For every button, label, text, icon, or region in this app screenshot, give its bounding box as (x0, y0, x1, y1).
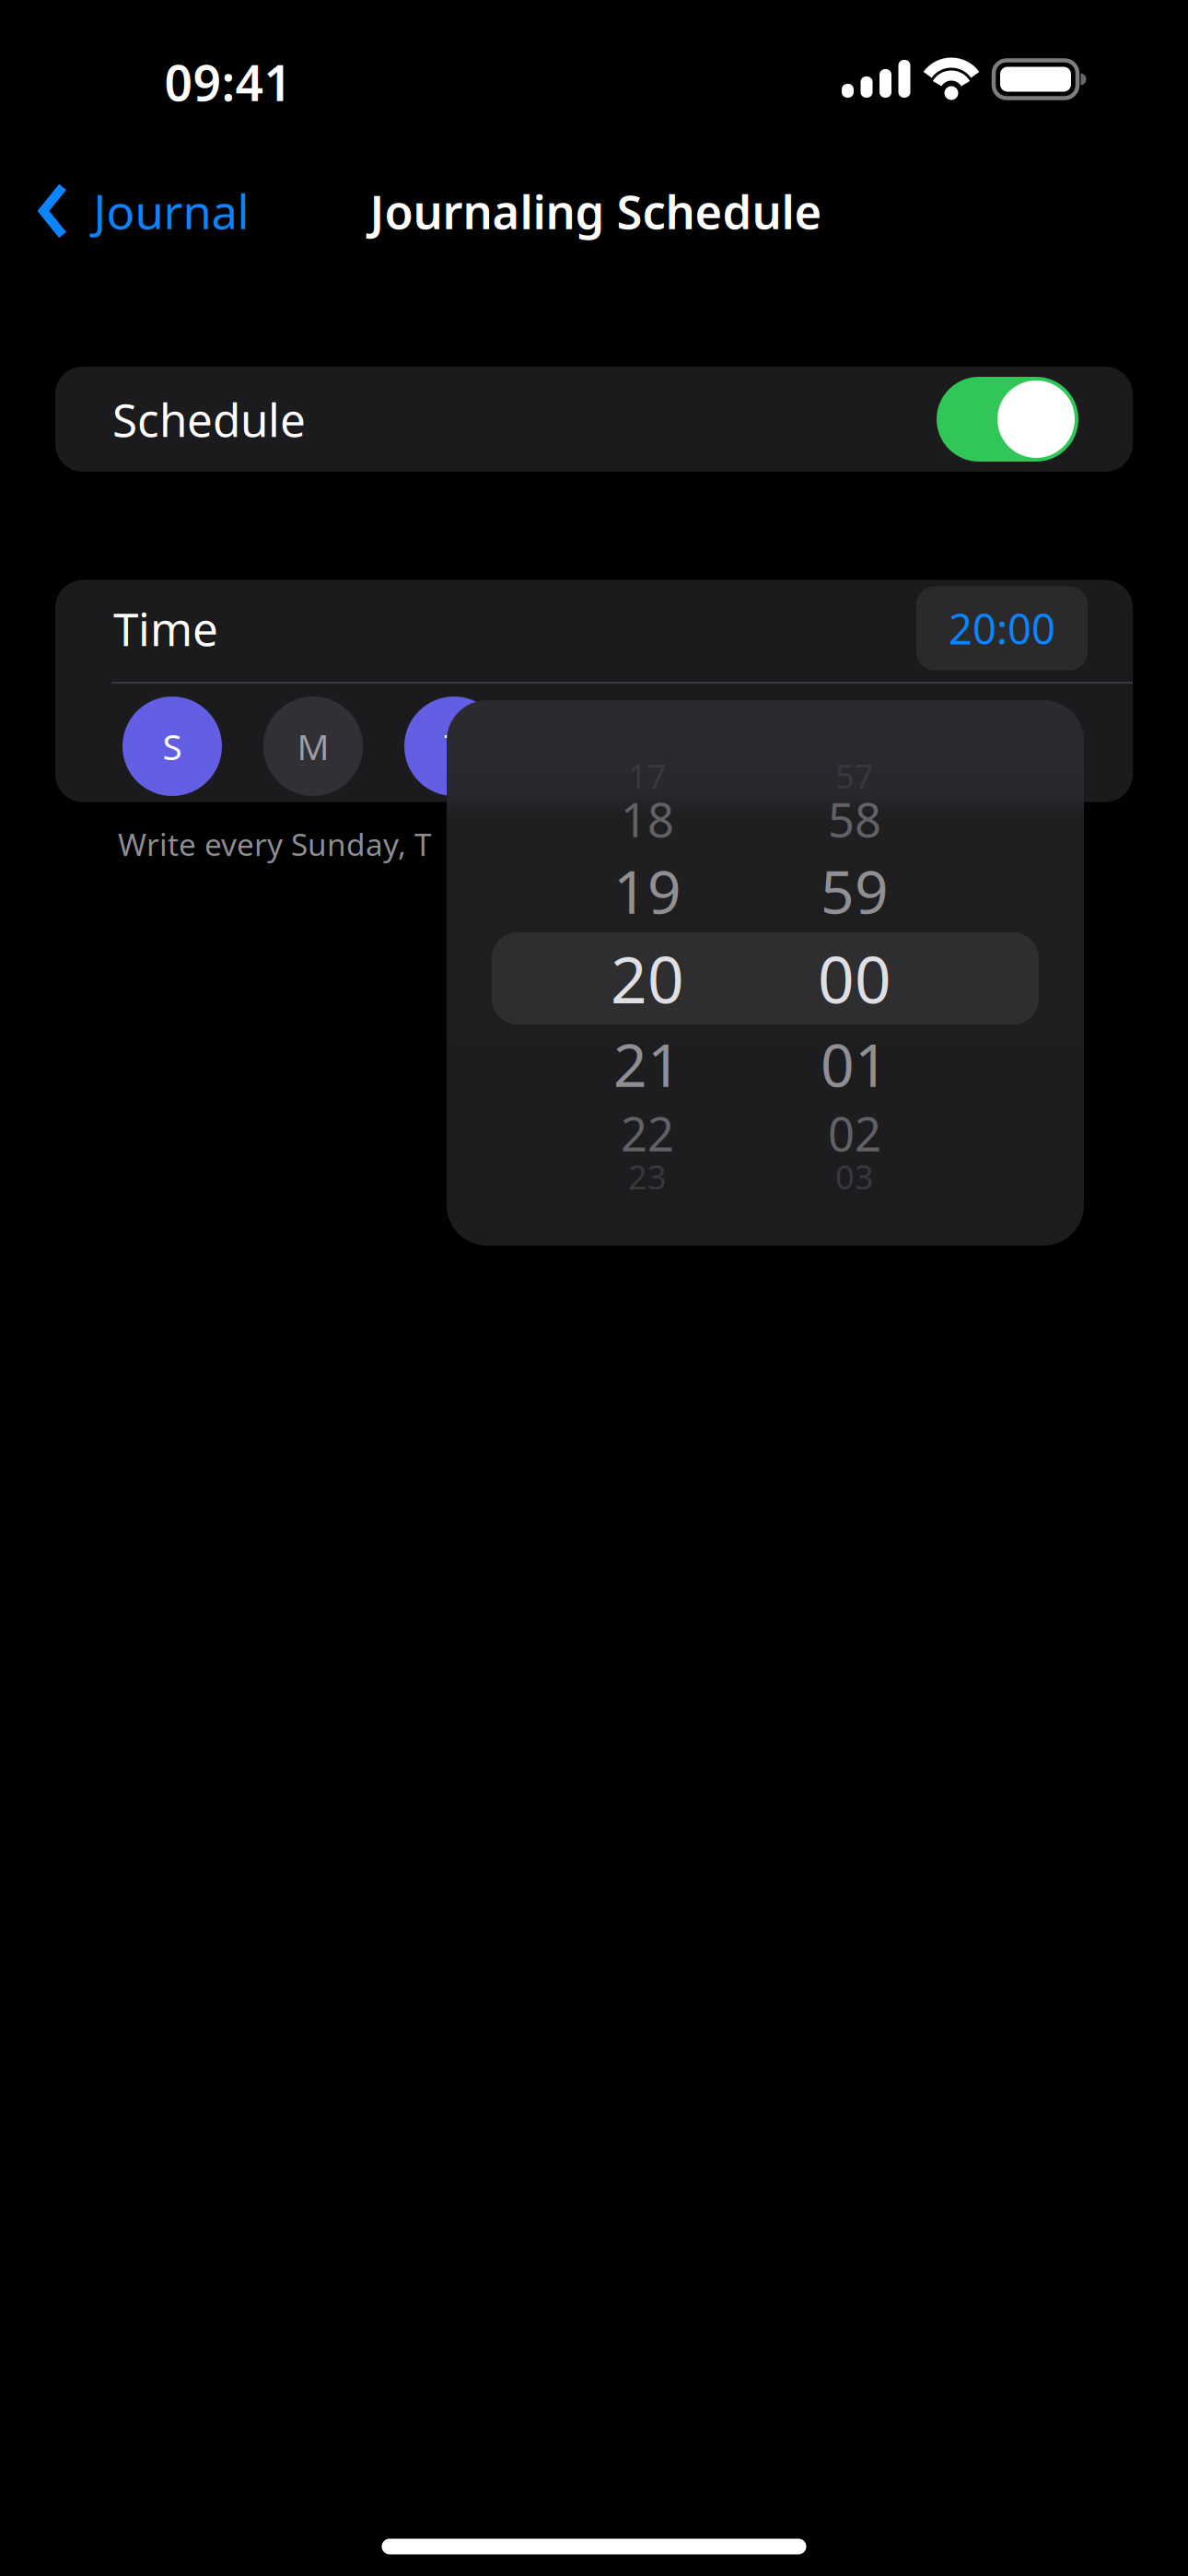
staticText: 57 (835, 754, 874, 798)
staticText: Time (113, 598, 218, 658)
staticText: T (444, 723, 464, 770)
staticText: 09:41 (164, 49, 292, 115)
staticText: 03 (835, 1155, 874, 1199)
staticText: 20 (611, 936, 684, 1021)
staticText: S (163, 723, 182, 770)
button[interactable]: Monday (263, 697, 363, 796)
button[interactable]: Back (28, 160, 258, 262)
staticText: 22 (621, 1102, 674, 1164)
staticText: 58 (828, 788, 881, 850)
button[interactable]: Sunday (122, 697, 222, 796)
staticText: Schedule (112, 389, 306, 449)
staticText: 21 (613, 1025, 681, 1103)
staticText: 23 (628, 1155, 667, 1199)
button[interactable]: Schedule (937, 377, 1078, 462)
staticText: M (297, 723, 329, 770)
staticText: 00 (818, 936, 891, 1021)
button[interactable]: Tuesday (404, 697, 504, 796)
staticText: 20:00 (949, 601, 1055, 656)
staticText: Write every Sunday, T (118, 824, 432, 864)
staticText: 18 (621, 788, 674, 850)
button[interactable]: Time (916, 586, 1088, 670)
staticText: Journaling Schedule (370, 180, 822, 242)
staticText: 02 (828, 1102, 881, 1164)
staticText: 01 (821, 1025, 889, 1103)
staticText: 59 (821, 852, 889, 930)
staticText: 19 (613, 852, 681, 930)
staticText: Journal (93, 180, 249, 242)
staticText: 17 (628, 754, 667, 798)
